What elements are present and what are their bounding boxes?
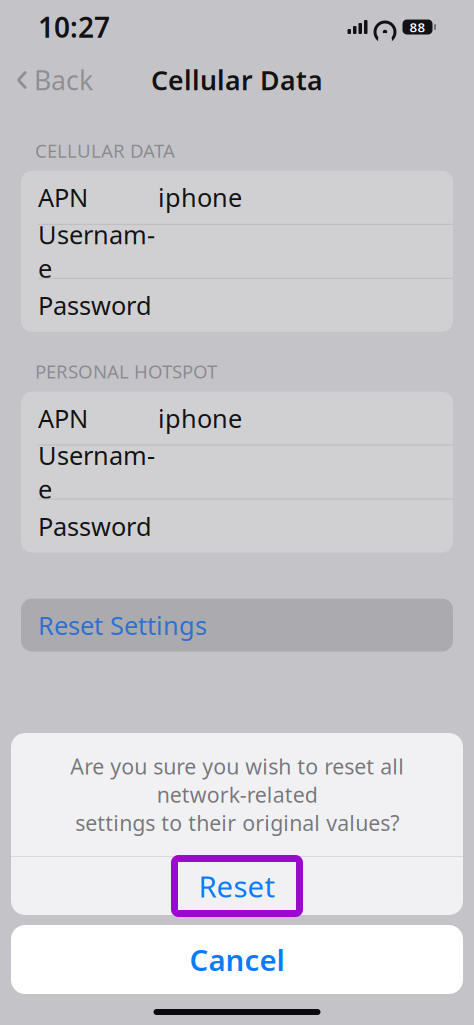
staticText: Are you sure you wish to reset all netwo… <box>70 752 404 837</box>
button[interactable]: Password <box>21 500 453 553</box>
staticText: Cellular Data <box>151 62 323 98</box>
button[interactable]: Username <box>21 446 453 499</box>
button[interactable]: Reset <box>11 857 463 915</box>
button[interactable]: Username <box>21 225 453 278</box>
staticText: APN <box>38 401 88 435</box>
button[interactable]: Back <box>3 55 106 105</box>
staticText: APN <box>38 180 88 214</box>
staticText: Password <box>38 509 152 543</box>
button[interactable]: APN <box>21 171 453 224</box>
button[interactable]: Password <box>21 279 453 332</box>
staticText: Username <box>38 218 155 285</box>
staticText: 88 <box>409 18 425 36</box>
staticText: CELLULAR DATA <box>35 138 175 163</box>
staticText: Back <box>34 62 93 98</box>
staticText: Reset Settings <box>38 608 207 642</box>
staticText: PERSONAL HOTSPOT <box>35 359 217 384</box>
staticText: Password <box>38 288 152 322</box>
staticText: iphone <box>158 401 242 435</box>
button[interactable]: APN <box>21 392 453 445</box>
staticText: Reset <box>198 866 275 905</box>
staticText: Cancel <box>189 940 284 979</box>
button[interactable]: Reset Settings <box>21 599 453 652</box>
button[interactable]: Cancel <box>11 925 463 994</box>
staticText: iphone <box>158 180 242 214</box>
staticText: 10:27 <box>38 8 110 46</box>
staticText: Username <box>38 438 155 506</box>
